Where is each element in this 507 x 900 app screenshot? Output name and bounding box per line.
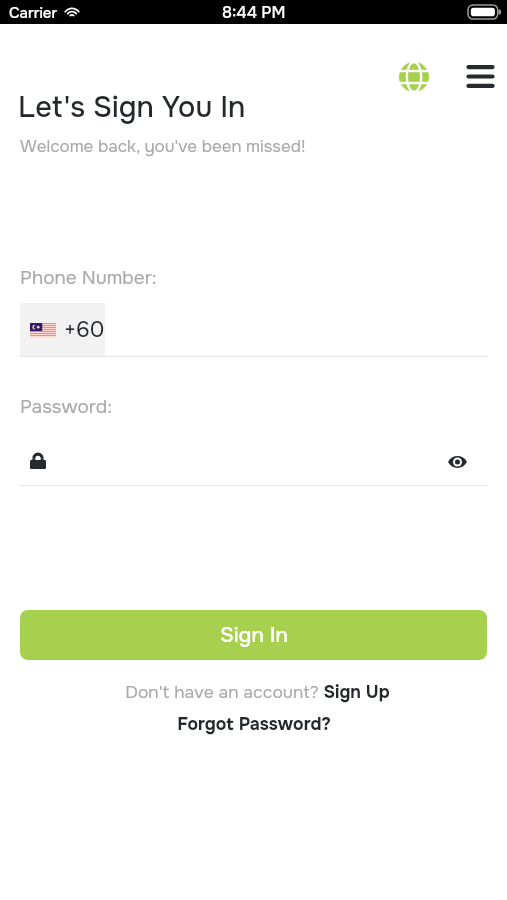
staticText: Sign In	[220, 622, 288, 649]
staticText: +60	[64, 316, 105, 344]
button[interactable]: Sign In	[20, 610, 487, 660]
button[interactable]: Menu	[460, 56, 501, 97]
staticText: Forgot Password?	[177, 713, 331, 735]
staticText: Phone Number:	[20, 266, 157, 290]
staticText: Let's Sign You In	[18, 89, 246, 126]
button[interactable]: Show password	[442, 446, 473, 477]
button[interactable]: Don't have an account? Sign Up	[4, 680, 507, 704]
staticText: Welcome back, you've been missed!	[20, 136, 306, 158]
button[interactable]: +60	[20, 303, 105, 357]
staticText: Don't have an account? Sign Up	[125, 681, 390, 703]
staticText: 8:44 PM	[222, 2, 286, 22]
staticText: Password:	[20, 395, 112, 419]
button[interactable]: Language	[393, 56, 434, 97]
staticText: Carrier	[9, 3, 58, 22]
button[interactable]: Forgot Password?	[0, 711, 507, 737]
